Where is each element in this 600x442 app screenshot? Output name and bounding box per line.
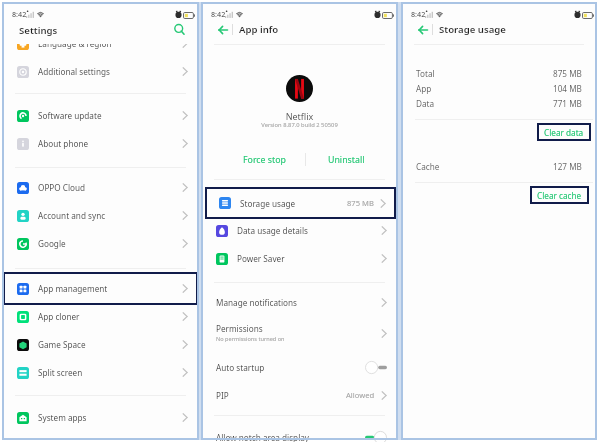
- staticText: 127 MB: [553, 161, 582, 172]
- button[interactable]: Game Space: [3, 330, 198, 359]
- button[interactable]: Split screen: [3, 358, 198, 387]
- staticText: PIP: [216, 390, 229, 401]
- staticText: Account and sync: [38, 210, 182, 221]
- button[interactable]: Uninstall: [306, 150, 387, 169]
- button[interactable]: About phone: [3, 129, 198, 158]
- staticText: Data: [416, 98, 553, 109]
- staticText: About phone: [38, 138, 182, 149]
- staticText: Version 8.87.0 build 2 50509: [202, 121, 397, 129]
- button[interactable]: PIP: [202, 381, 397, 409]
- staticText: Clear data: [544, 127, 584, 138]
- button[interactable]: Storage usage: [205, 187, 396, 219]
- staticText: Manage notifications: [216, 297, 297, 308]
- staticText: No permissions turned on: [216, 335, 285, 343]
- staticText: Permissions: [216, 323, 263, 334]
- staticText: OPPO Cloud: [38, 182, 182, 193]
- staticText: Total: [416, 68, 553, 79]
- staticText: Auto startup: [216, 362, 265, 373]
- button[interactable]: Permissions: [202, 319, 397, 347]
- staticText: Software update: [38, 110, 182, 121]
- staticText: Cache: [416, 161, 553, 172]
- staticText: Storage usage: [439, 23, 506, 36]
- staticText: System apps: [38, 412, 182, 423]
- button[interactable]: Force stop: [224, 150, 305, 169]
- staticText: Clear cache: [537, 190, 582, 201]
- staticText: 104 MB: [553, 83, 582, 94]
- staticText: Allow notch area display: [216, 432, 310, 442]
- staticText: App info: [239, 23, 279, 36]
- staticText: 875 MB: [553, 68, 582, 79]
- button[interactable]: Power Saver: [202, 244, 397, 273]
- staticText: Storage usage: [240, 198, 347, 209]
- staticText: Additional settings: [38, 66, 182, 77]
- staticText: Settings: [19, 24, 58, 37]
- button[interactable]: Allow notch area display: [202, 423, 397, 442]
- staticText: 771 MB: [553, 98, 582, 109]
- button[interactable]: App cloner: [3, 302, 198, 331]
- staticText: Power Saver: [237, 253, 381, 264]
- button[interactable]: Data usage details: [202, 216, 397, 245]
- staticText: Uninstall: [328, 154, 365, 166]
- staticText: Split screen: [38, 367, 182, 378]
- button[interactable]: Clear cache: [530, 186, 589, 204]
- button[interactable]: Search: [173, 23, 186, 36]
- staticText: Game Space: [38, 339, 182, 350]
- button[interactable]: Back: [418, 25, 428, 35]
- staticText: Language & region: [38, 44, 182, 49]
- staticText: Allowed: [346, 390, 375, 400]
- button[interactable]: Additional settings: [3, 57, 198, 86]
- button[interactable]: System apps: [3, 403, 198, 432]
- button[interactable]: Account and sync: [3, 201, 198, 230]
- button[interactable]: Manage notifications: [202, 288, 397, 316]
- staticText: App: [416, 83, 553, 94]
- button[interactable]: Auto startup: [202, 353, 397, 381]
- button[interactable]: Back: [218, 25, 228, 35]
- staticText: App cloner: [38, 311, 182, 322]
- button[interactable]: OPPO Cloud: [3, 173, 198, 202]
- button[interactable]: Language & region: [3, 44, 198, 58]
- staticText: Netflix: [202, 110, 397, 122]
- staticText: Data usage details: [237, 225, 381, 236]
- staticText: App management: [38, 283, 182, 294]
- staticText: Google: [38, 238, 182, 249]
- staticText: 875 MB: [347, 198, 374, 208]
- staticText: 8:42: [411, 9, 426, 19]
- staticText: Force stop: [243, 154, 286, 166]
- staticText: 8:42: [211, 9, 226, 19]
- button[interactable]: App management: [3, 272, 198, 305]
- staticText: 8:42: [12, 9, 27, 19]
- button[interactable]: Clear data: [537, 123, 591, 141]
- button[interactable]: Software update: [3, 101, 198, 130]
- button[interactable]: Google: [3, 229, 198, 258]
